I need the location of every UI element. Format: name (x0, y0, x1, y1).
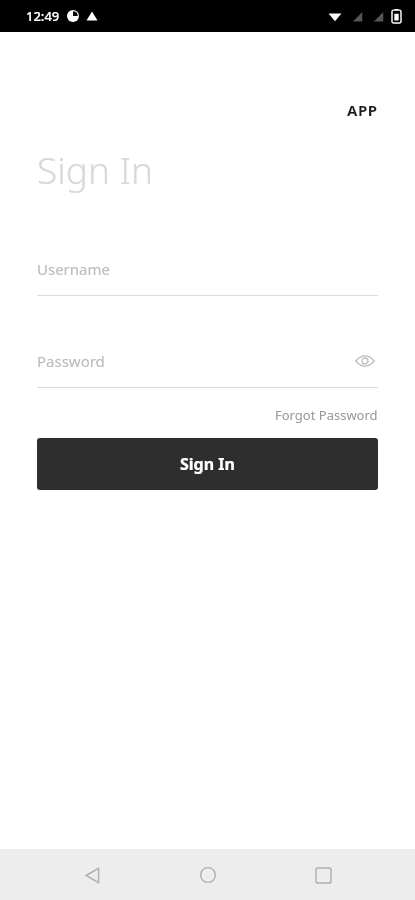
staticText: Sign In (180, 453, 235, 475)
staticText: Username (37, 259, 110, 279)
staticText: Password (37, 351, 105, 371)
button[interactable]: APP (0, 100, 378, 120)
button[interactable]: Home (184, 851, 232, 899)
button[interactable]: Forgot Password (0, 406, 378, 424)
button[interactable]: Show password (352, 348, 378, 374)
button[interactable]: Password (37, 348, 378, 374)
button[interactable]: Back (68, 851, 116, 899)
staticText: 12:49 (26, 7, 60, 25)
button[interactable]: Sign In (37, 438, 378, 490)
staticText: Sign In (37, 144, 154, 194)
button[interactable]: Recent apps (299, 851, 347, 899)
staticText: APP (347, 100, 378, 120)
staticText: Forgot Password (275, 406, 378, 424)
button[interactable]: Username (37, 256, 378, 282)
